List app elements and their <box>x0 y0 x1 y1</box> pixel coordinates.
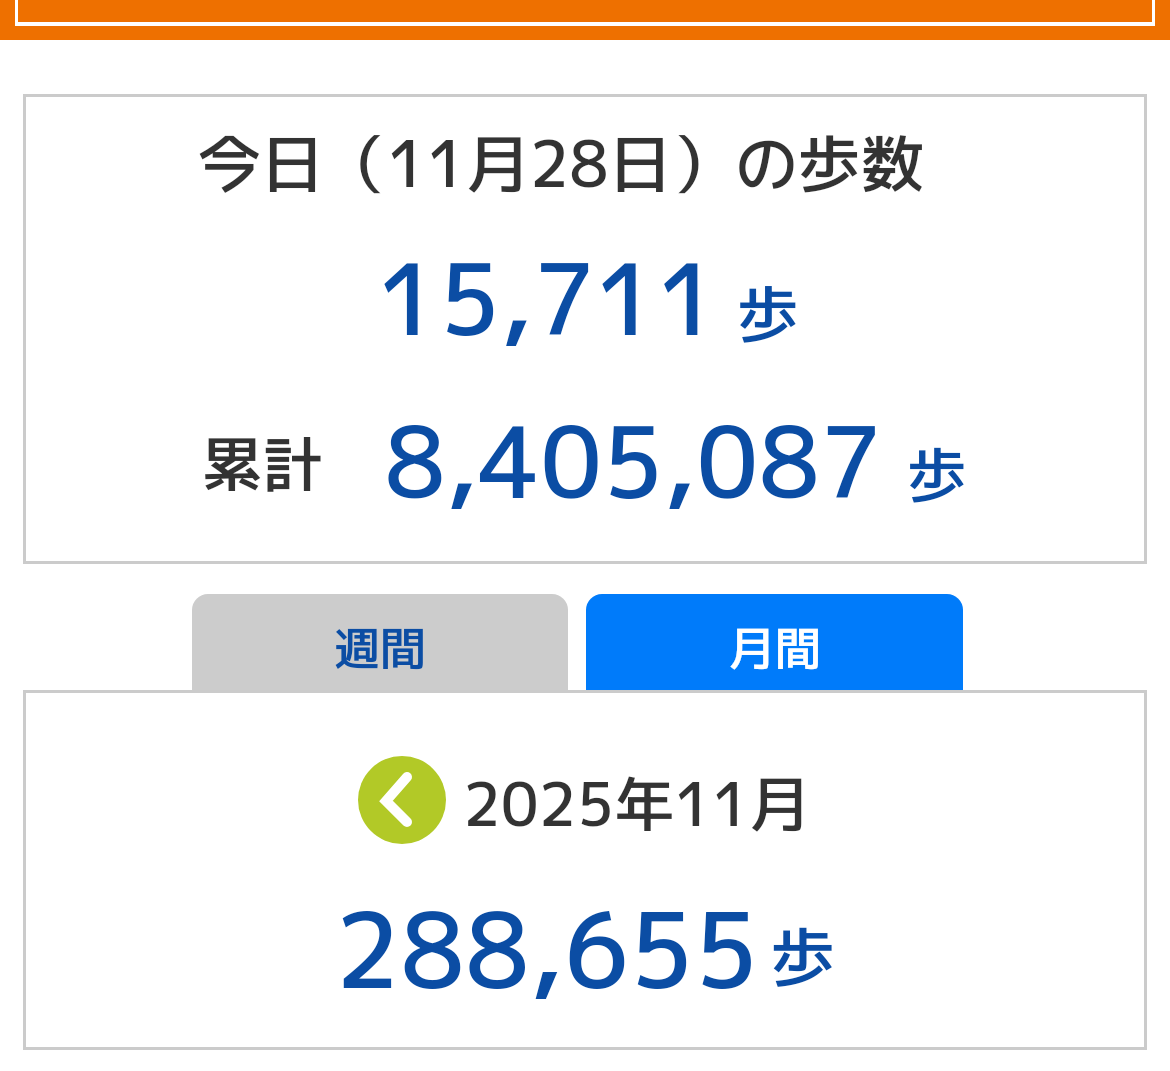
staticText: 今日（11月28日）の歩数 <box>198 119 924 207</box>
button[interactable] <box>586 594 963 704</box>
staticText: 歩 <box>907 432 967 516</box>
button[interactable]: Previous month <box>358 756 446 844</box>
staticText: 歩 <box>737 270 800 356</box>
staticText: 週間 <box>334 616 426 680</box>
staticText: 15,711 <box>377 230 719 367</box>
button[interactable] <box>192 594 568 704</box>
staticText: 歩 <box>770 911 836 1002</box>
staticText: 8,405,087 <box>384 393 882 530</box>
staticText: 累計 <box>202 421 322 505</box>
staticText: 月間 <box>729 616 821 680</box>
staticText: 288,655 <box>335 877 759 1021</box>
staticText: 2025年11月 <box>463 761 810 845</box>
